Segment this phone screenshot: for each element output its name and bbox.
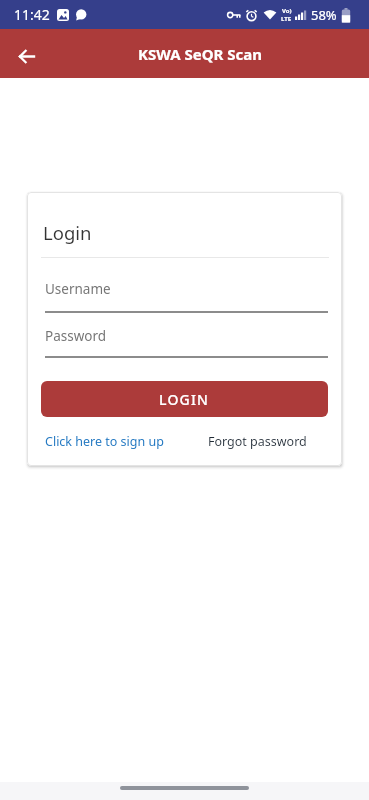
staticText: 11:42	[14, 5, 50, 24]
button[interactable]	[10, 37, 44, 71]
staticText: LTE	[281, 15, 292, 23]
staticText: LOGIN	[159, 390, 210, 409]
staticText: 58%	[311, 6, 337, 24]
staticText: Username	[45, 280, 111, 298]
staticText: Login	[43, 220, 92, 245]
button[interactable]: LOGIN	[41, 381, 328, 417]
button[interactable]: Forgot password	[208, 433, 307, 450]
staticText: Vo)	[282, 7, 292, 15]
button[interactable]: Click here to sign up	[45, 433, 164, 450]
staticText: KSWA SeQR Scan	[138, 44, 262, 64]
staticText: Password	[45, 327, 107, 345]
